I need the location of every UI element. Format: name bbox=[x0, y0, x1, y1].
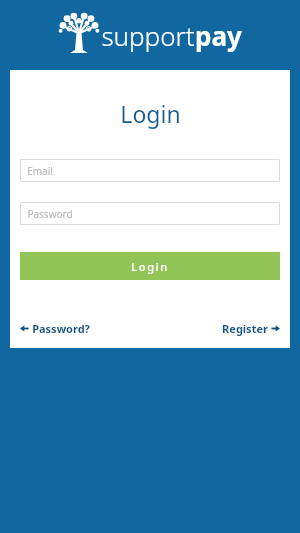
staticText: Password bbox=[27, 207, 73, 221]
staticText: support bbox=[101, 18, 195, 53]
staticText: Login bbox=[131, 259, 169, 274]
staticText: Login bbox=[120, 98, 181, 129]
button[interactable]: Email bbox=[20, 159, 280, 182]
button[interactable]: Password bbox=[20, 202, 280, 225]
staticText: Password? bbox=[32, 321, 90, 336]
button[interactable]: Password? bbox=[20, 318, 90, 339]
button[interactable]: Login bbox=[20, 252, 280, 280]
staticText: Email bbox=[27, 164, 53, 178]
staticText: pay bbox=[195, 18, 242, 53]
staticText: Register bbox=[222, 321, 268, 336]
button[interactable]: Register bbox=[222, 318, 280, 339]
